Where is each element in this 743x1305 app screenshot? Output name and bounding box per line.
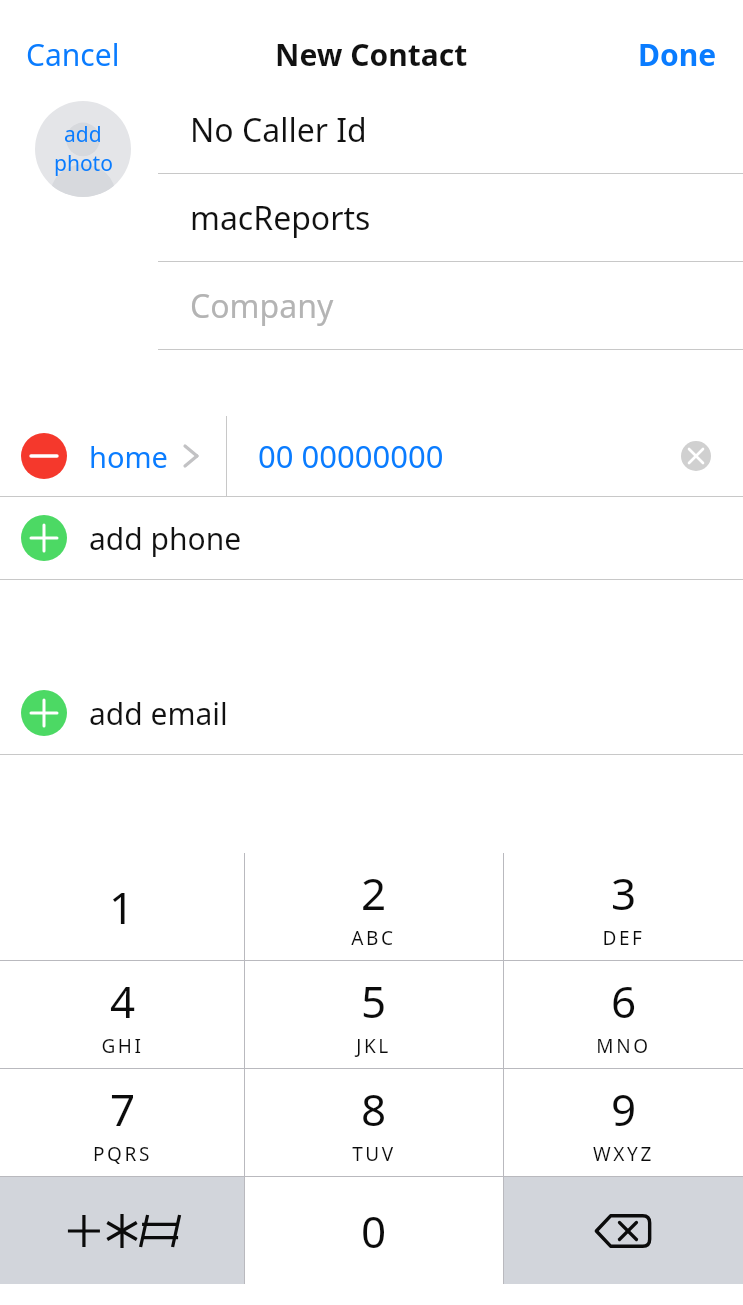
- staticText: 8: [361, 1079, 387, 1139]
- staticText: add phone: [89, 518, 242, 559]
- staticText: GHI: [101, 1033, 144, 1059]
- staticText: New Contact: [275, 34, 468, 75]
- button[interactable]: 9: [503, 1069, 743, 1176]
- staticText: DEF: [602, 925, 645, 951]
- staticText: 2: [361, 863, 387, 923]
- button[interactable]: add phone: [0, 497, 743, 579]
- staticText: WXYZ: [593, 1141, 654, 1167]
- staticText: ABC: [351, 925, 396, 951]
- button[interactable]: add email: [0, 672, 743, 754]
- button[interactable]: Remove phone: [0, 416, 743, 496]
- button[interactable]: Cancel: [14, 26, 132, 83]
- button[interactable]: 3: [503, 853, 743, 960]
- button[interactable]: Done: [626, 26, 729, 83]
- staticText: 1: [109, 877, 135, 937]
- staticText: No Caller Id: [190, 108, 367, 152]
- button[interactable]: No Caller Id: [0, 86, 743, 173]
- staticText: macReports: [190, 196, 371, 240]
- button[interactable]: 7: [0, 1069, 244, 1176]
- staticText: 5: [361, 971, 387, 1031]
- staticText: 0: [361, 1201, 387, 1261]
- button[interactable]: Clear number: [681, 441, 711, 471]
- staticText: Done: [638, 34, 717, 75]
- staticText: 6: [611, 971, 637, 1031]
- button[interactable]: 5: [244, 961, 503, 1068]
- staticText: TUV: [352, 1141, 396, 1167]
- button[interactable]: macReports: [0, 174, 743, 261]
- button[interactable]: 0: [244, 1177, 503, 1284]
- staticText: photo: [54, 149, 113, 178]
- staticText: add: [64, 120, 102, 149]
- staticText: Company: [190, 284, 334, 328]
- staticText: Cancel: [26, 34, 120, 75]
- button[interactable]: 4: [0, 961, 244, 1068]
- button[interactable]: Add photo: [35, 101, 131, 197]
- button[interactable]: 6: [503, 961, 743, 1068]
- button[interactable]: 2: [244, 853, 503, 960]
- button[interactable]: Backspace: [503, 1177, 743, 1284]
- button[interactable]: Plus star hash: [0, 1177, 244, 1284]
- staticText: 4: [110, 971, 136, 1031]
- button[interactable]: Remove phone: [21, 433, 67, 479]
- staticText: 9: [611, 1079, 637, 1139]
- button[interactable]: 8: [244, 1069, 503, 1176]
- staticText: add email: [89, 693, 228, 734]
- staticText: 7: [110, 1079, 136, 1139]
- staticText: PQRS: [93, 1141, 152, 1167]
- staticText: 00 00000000: [258, 435, 444, 477]
- button[interactable]: 1: [0, 853, 244, 960]
- staticText: home: [89, 437, 168, 476]
- staticText: MNO: [596, 1033, 651, 1059]
- staticText: JKL: [356, 1033, 391, 1059]
- button[interactable]: Company: [0, 262, 743, 349]
- staticText: 3: [611, 863, 637, 923]
